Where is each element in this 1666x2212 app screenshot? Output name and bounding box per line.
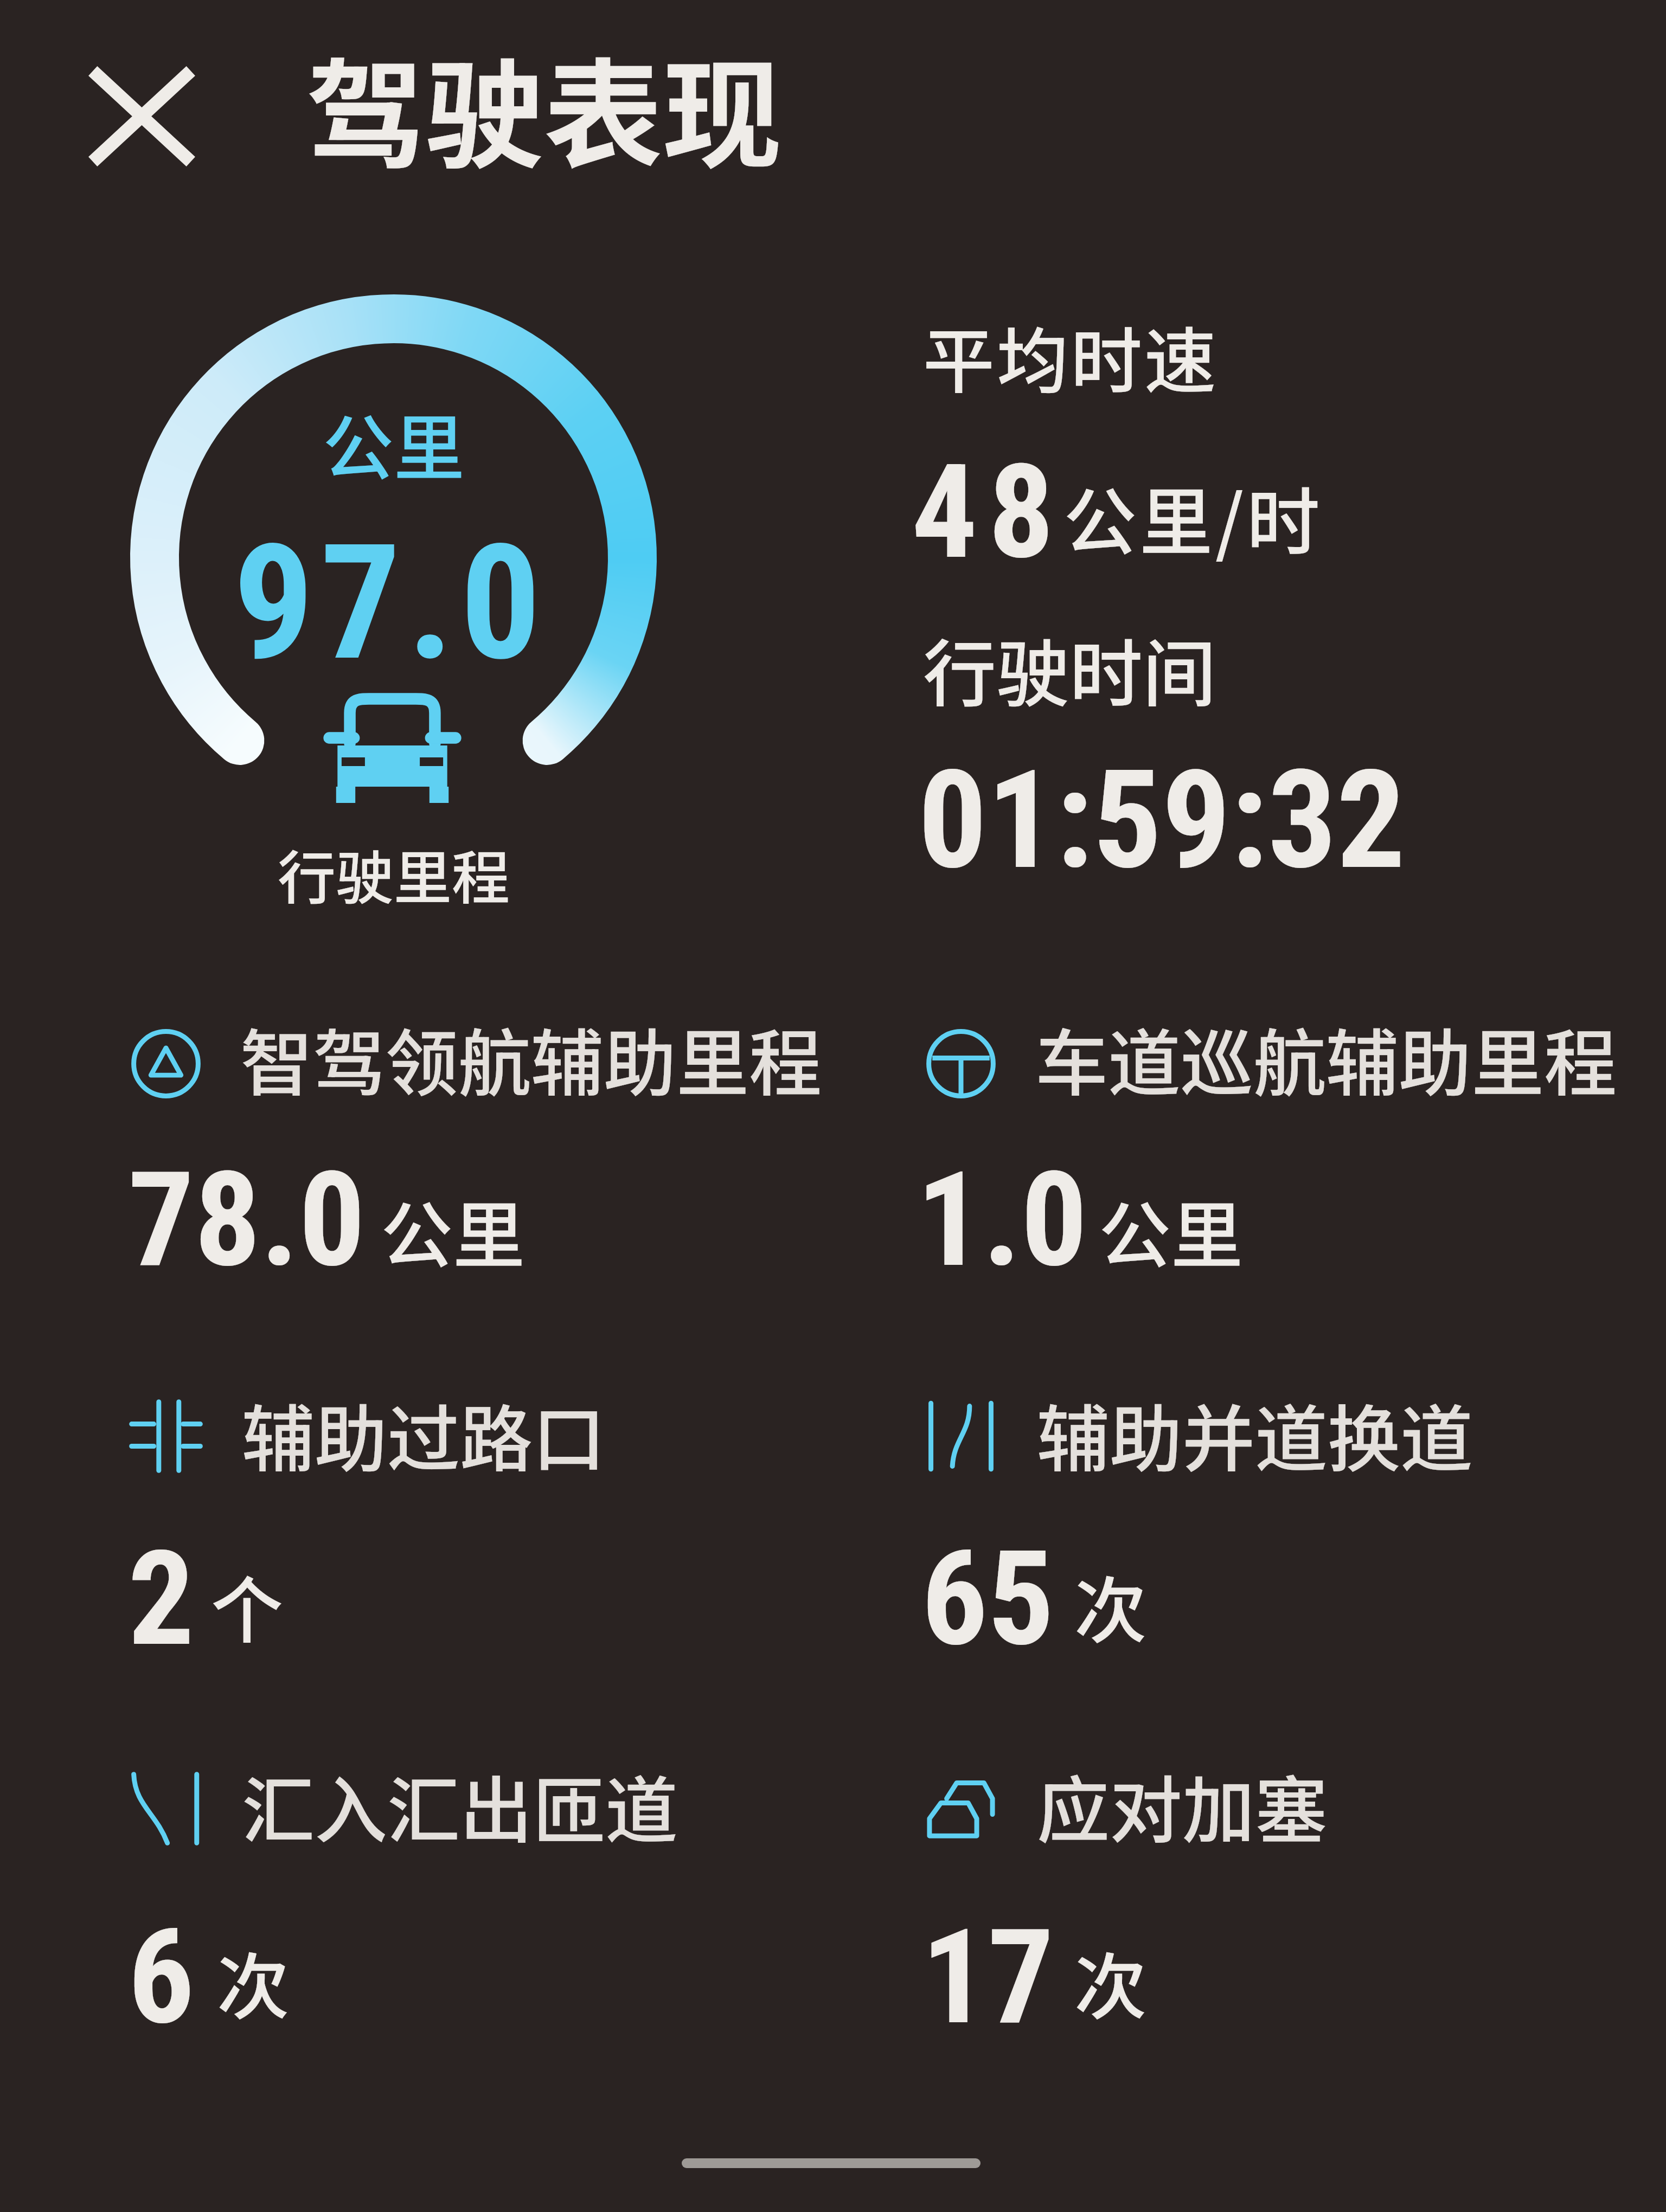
staticText: 驾驶表现 [306,21,782,192]
staticText: 个 [211,1553,283,1658]
staticText: 行驶时间 [923,615,1216,721]
staticText: 17 [921,1900,1054,2054]
staticText: 车道巡航辅助里程 [1035,1006,1617,1111]
staticText: 1.0 [917,1143,1087,1297]
staticText: 2 [128,1522,195,1676]
staticText: 公里 [1099,1178,1243,1283]
button[interactable] [904,1751,1625,2033]
button[interactable]: Close [91,69,193,164]
staticText: 01:59:32 [918,741,1406,900]
staticText: 次 [217,1930,289,2034]
staticText: 公里 [381,1178,525,1283]
staticText: 辅助过路口 [242,1381,606,1487]
button[interactable] [108,1751,830,2033]
button[interactable] [904,1006,1625,1288]
staticText: 平均时速 [923,304,1218,408]
staticText: 汇入汇出匝道 [242,1753,678,1858]
button[interactable] [108,1379,830,1661]
staticText: 78.0 [128,1143,366,1297]
staticText: 公里/时 [1063,464,1323,569]
button[interactable] [108,1006,830,1288]
staticText: 65 [921,1522,1054,1676]
button[interactable] [904,1379,1625,1661]
staticText: 48 [912,436,1065,588]
staticText: 公里 [323,391,465,494]
staticText: 次 [1074,1930,1146,2034]
staticText: 辅助并道换道 [1037,1381,1473,1487]
staticText: 行驶里程 [278,832,510,916]
staticText: 次 [1074,1553,1146,1658]
staticText: 97.0 [233,510,548,697]
staticText: 智驾领航辅助里程 [240,1006,822,1111]
staticText: 6 [128,1900,195,2054]
staticText: 应对加塞 [1037,1753,1328,1858]
